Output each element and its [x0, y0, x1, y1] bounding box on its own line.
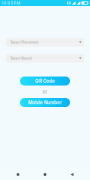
button[interactable]: Select Placement	[6, 38, 84, 46]
staticText: Mobile Number	[28, 100, 62, 105]
staticText: 10:05 PM	[1, 1, 20, 5]
button[interactable]: QR Code	[20, 76, 70, 85]
staticText: Select Round	[11, 56, 32, 60]
button[interactable]: Select Round	[6, 54, 84, 62]
button[interactable]: Recents	[9, 169, 27, 179]
button[interactable]: Back	[63, 169, 81, 179]
button[interactable]: Mobile Number	[20, 98, 70, 107]
button[interactable]: Home	[36, 169, 54, 179]
staticText: Select Placement	[11, 40, 39, 44]
staticText: QR Code	[35, 78, 55, 84]
staticText: or	[42, 89, 47, 94]
